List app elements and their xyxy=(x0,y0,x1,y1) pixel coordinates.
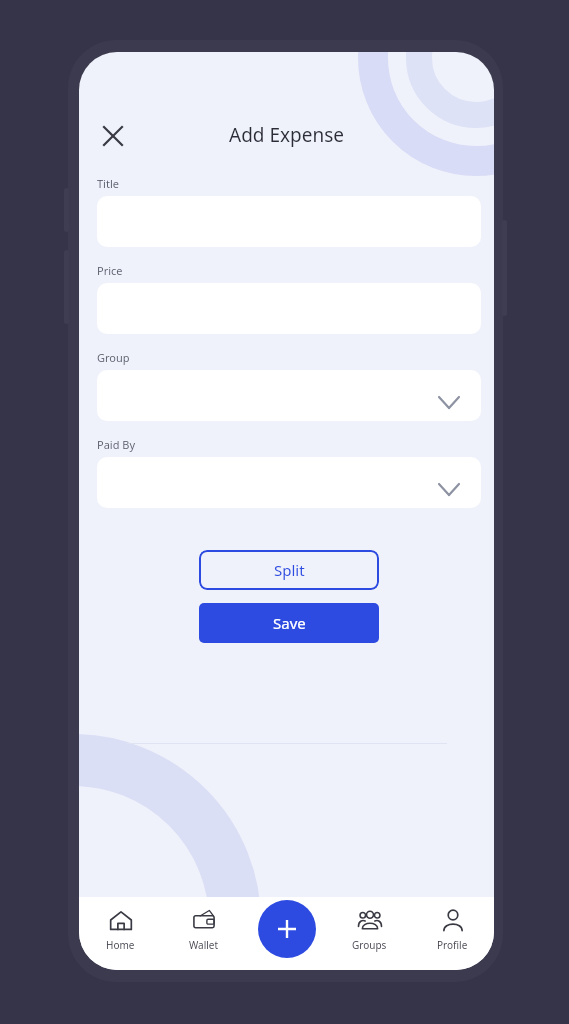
button[interactable]: Save xyxy=(199,603,379,643)
staticText: Group xyxy=(97,350,130,365)
staticText: Profile xyxy=(437,938,468,952)
button[interactable]: Split xyxy=(199,550,379,590)
button[interactable]: Add xyxy=(258,900,316,958)
button[interactable]: Group dropdown xyxy=(97,370,481,421)
staticText: Save xyxy=(273,613,306,633)
button[interactable]: Close xyxy=(91,114,135,158)
button[interactable]: Groups xyxy=(328,897,411,970)
button[interactable]: Profile xyxy=(411,897,494,970)
staticText: Add Expense xyxy=(79,122,494,148)
staticText: Wallet xyxy=(189,938,219,952)
staticText: Groups xyxy=(352,938,387,952)
button[interactable]: Home xyxy=(79,897,162,970)
staticText: Home xyxy=(106,938,135,952)
button[interactable]: Wallet xyxy=(162,897,245,970)
staticText: Title xyxy=(97,176,119,191)
button[interactable]: Paid By dropdown xyxy=(97,457,481,508)
staticText: Price xyxy=(97,263,123,278)
staticText: Split xyxy=(274,560,305,580)
staticText: Paid By xyxy=(97,437,136,452)
